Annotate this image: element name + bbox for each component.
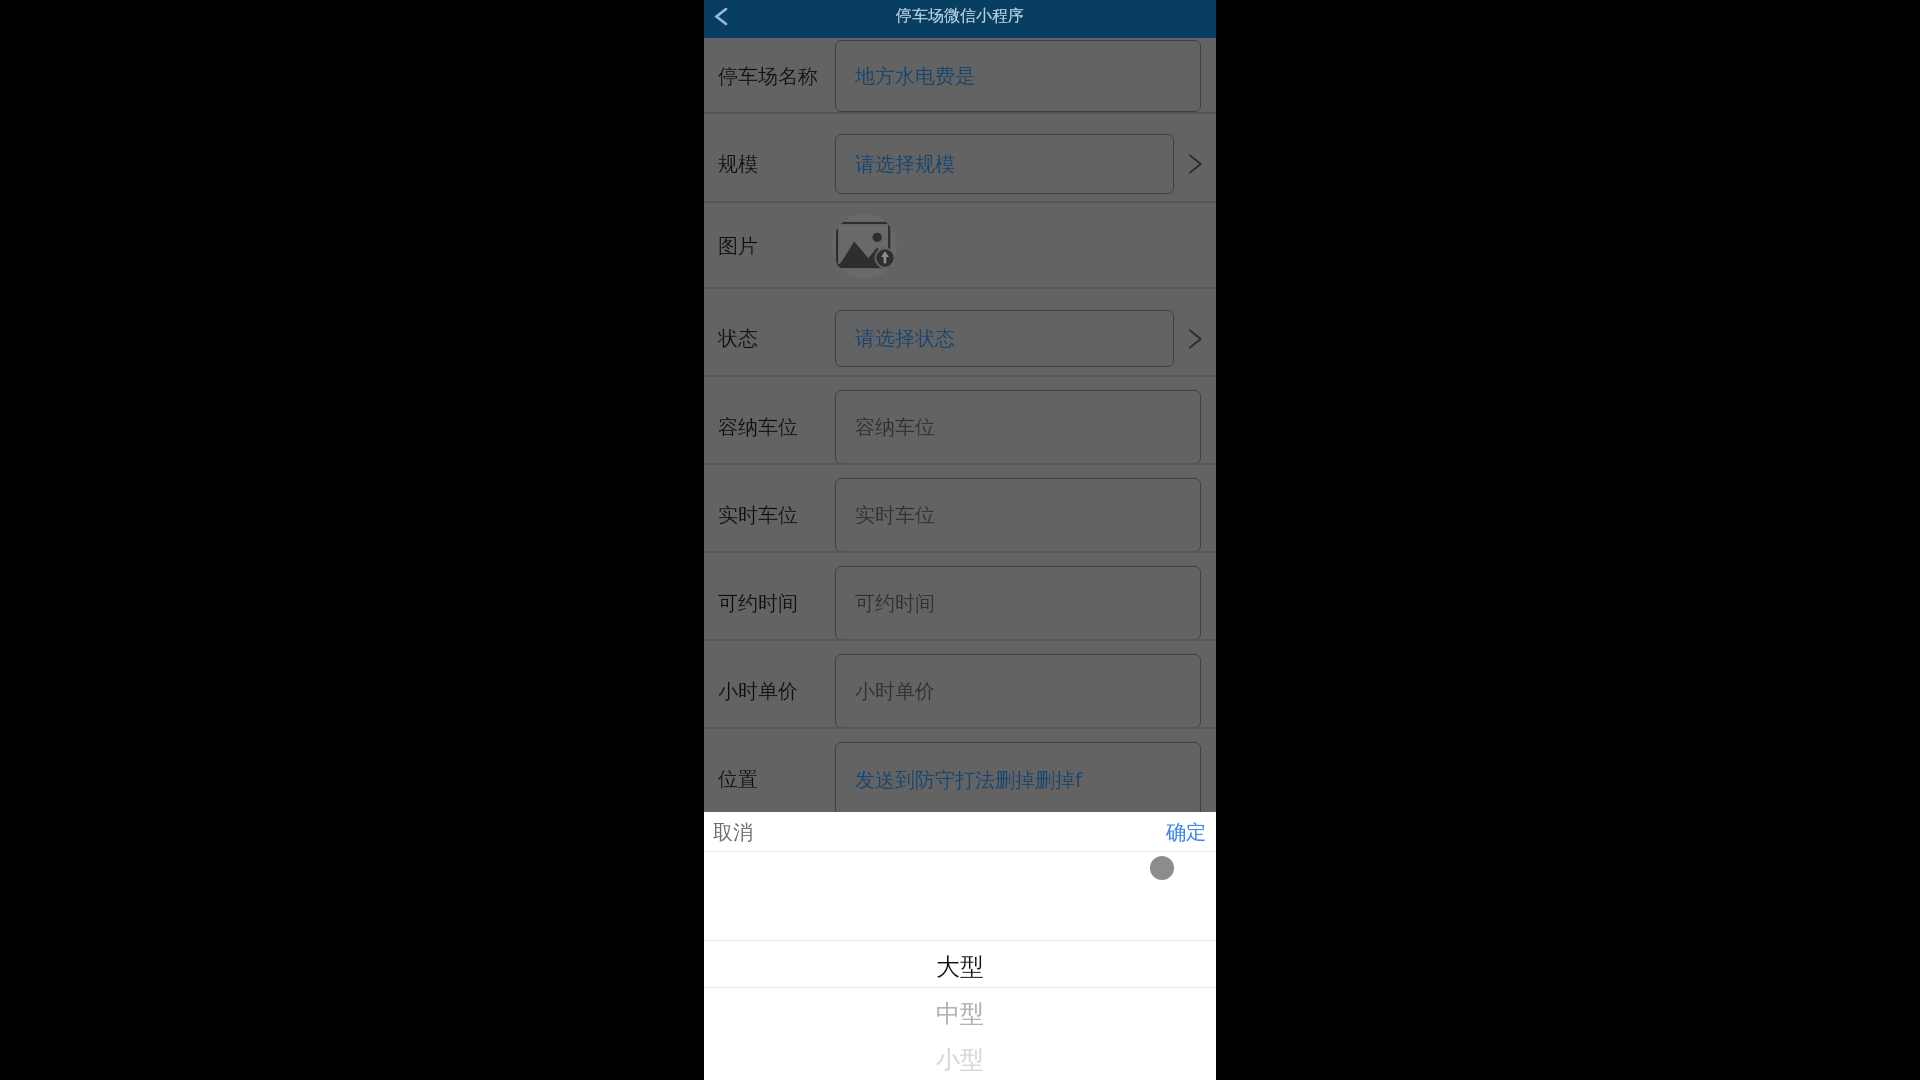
staticText: 可约时间 — [855, 591, 935, 616]
staticText: 小型 — [936, 1045, 984, 1075]
staticText: 规模 — [718, 152, 758, 177]
button[interactable]: 可约时间 — [704, 553, 1216, 641]
button[interactable]: 地方水电费是 — [704, 38, 1216, 114]
staticText: 确定 — [1166, 820, 1206, 845]
staticText: 实时车位 — [718, 503, 798, 528]
button[interactable]: 发送到防守打法删掉删掉f — [704, 729, 1216, 817]
button[interactable]: 请选择状态 — [704, 289, 1216, 377]
staticText: 请选择规模 — [855, 152, 955, 177]
staticText: 容纳车位 — [855, 415, 935, 440]
staticText: 容纳车位 — [718, 415, 798, 440]
button[interactable]: Back — [704, 0, 738, 32]
staticText: 小时单价 — [855, 679, 935, 704]
button[interactable]: 取消 — [704, 812, 762, 852]
button[interactable]: 确定 — [1156, 812, 1216, 852]
button[interactable]: 请选择规模 — [704, 114, 1216, 203]
staticText: 位置 — [718, 767, 758, 792]
staticText: 大型 — [936, 952, 984, 982]
staticText: 地方水电费是 — [855, 64, 975, 89]
staticText: 状态 — [718, 326, 758, 351]
button[interactable]: 小时单价 — [704, 641, 1216, 729]
staticText: 图片 — [718, 234, 758, 259]
staticText: 停车场名称 — [718, 64, 818, 89]
staticText: 发送到防守打法删掉删掉f — [855, 766, 1082, 793]
staticText: 停车场微信小程序 — [896, 6, 1024, 26]
button[interactable]: Upload image — [832, 214, 897, 279]
staticText: 实时车位 — [855, 503, 935, 528]
staticText: 小时单价 — [718, 679, 798, 704]
staticText: 中型 — [936, 999, 984, 1029]
button[interactable]: 容纳车位 — [704, 377, 1216, 465]
staticText: 请选择状态 — [855, 326, 955, 351]
staticText: 可约时间 — [718, 591, 798, 616]
button[interactable]: 实时车位 — [704, 465, 1216, 553]
staticText: 取消 — [713, 820, 753, 845]
